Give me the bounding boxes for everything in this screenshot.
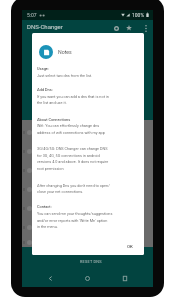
staticText: About Connections [37,117,71,122]
staticText: Just select two dns from the list. [37,73,93,77]
button[interactable]: Recent apps [116,270,133,287]
staticText: You can send me your thoughts/suggestion… [37,211,113,215]
staticText: Wifi: You can effortlessly change dns [37,123,100,127]
staticText: If you want you can add a dns that is no… [37,94,109,98]
staticText: OK [127,244,133,249]
staticText: Usage: [37,66,49,71]
button[interactable] [22,142,153,161]
button[interactable]: Settings [110,22,122,34]
button[interactable] [22,180,153,199]
staticText: RESET DNS [80,259,102,263]
staticText: root permission [37,166,64,170]
button[interactable] [22,237,153,247]
button[interactable] [22,123,153,142]
staticText: Notes [58,49,72,55]
staticText: address of wifi connections with my app [37,130,105,134]
staticText: DNS-Changer [27,23,63,30]
button[interactable]: More options [140,22,152,34]
button[interactable]: Home [79,270,96,287]
button[interactable]: RESET DNS [22,247,153,273]
staticText: for 3G, 4G, 5G connections in android [37,153,100,157]
button[interactable]: Rate [123,22,135,34]
staticText: Add Dns: [37,87,53,92]
staticText: close your net connections. [37,189,84,193]
staticText: 100% [132,12,145,18]
staticText: and/or error reports with 'Write Me' opt… [37,218,108,222]
staticText: 3G/4G/5G: DNS Changer can change DNS [37,146,108,150]
staticText: in the menu. [37,224,58,228]
staticText: 5:07 [27,12,37,18]
staticText: the list and use it. [37,100,67,104]
staticText: Contact: [37,204,52,209]
staticText: versions 4.0 and above. It does not requ… [37,159,109,163]
button[interactable] [22,199,153,218]
button[interactable] [22,218,153,237]
button[interactable] [22,161,153,180]
button[interactable]: OK [123,241,137,252]
button[interactable]: Back [42,270,59,287]
staticText: After changing Dns you don't need to ope… [37,183,110,187]
